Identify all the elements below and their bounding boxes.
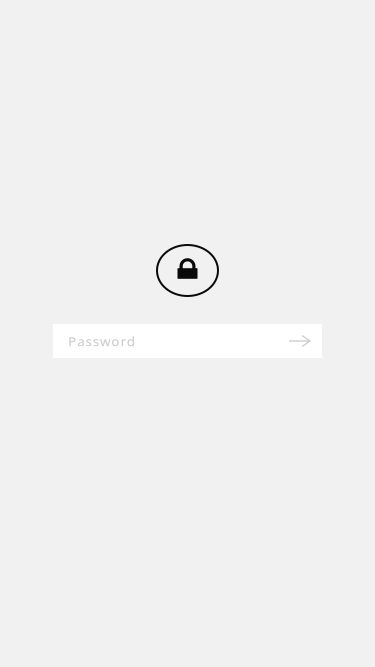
staticText: Password xyxy=(68,332,135,350)
button[interactable]: Password xyxy=(53,321,135,361)
button[interactable]: Submit password xyxy=(273,324,322,357)
